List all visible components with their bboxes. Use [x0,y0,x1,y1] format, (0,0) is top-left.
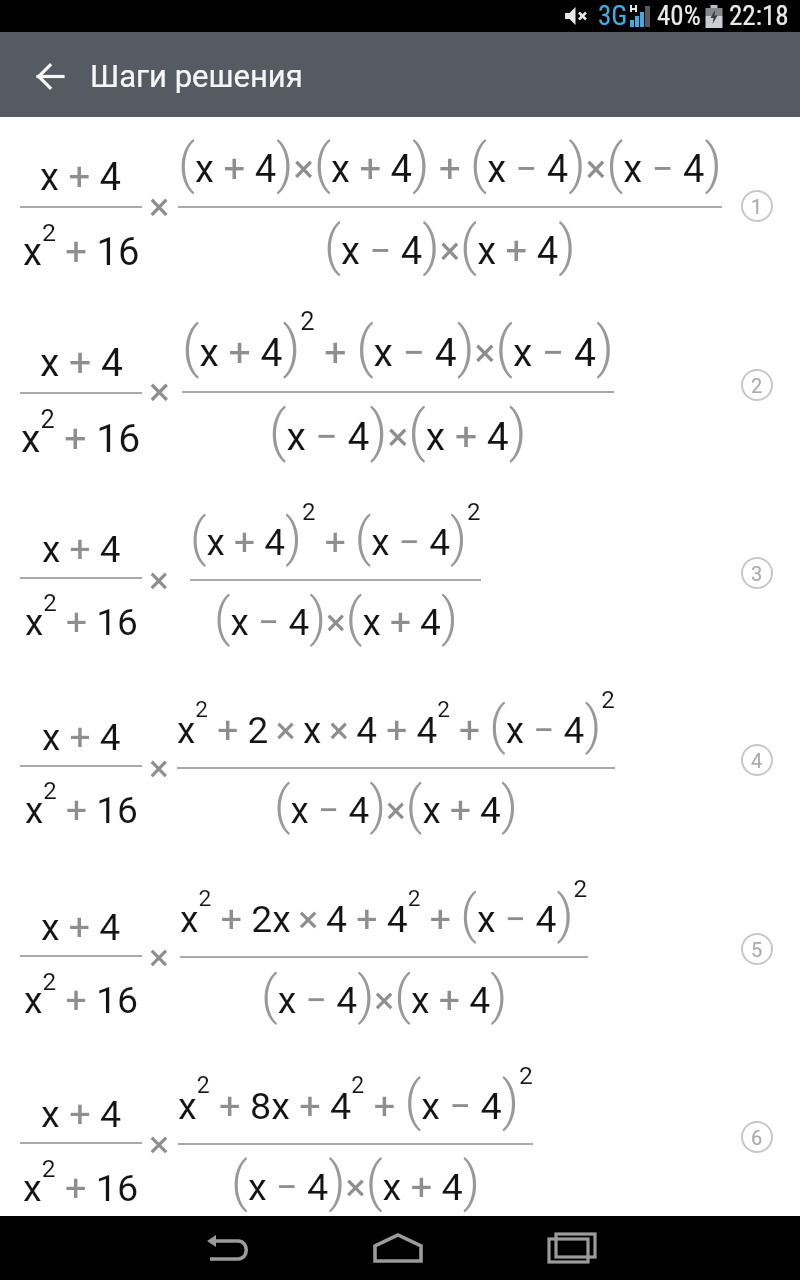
staticText: × [149,935,169,979]
staticText: (x + 4)×(x + 4) + (x − 4)×(x − 4) [178,132,722,195]
staticText: x2 + 16 [23,218,140,275]
staticText: (x − 4)×(x + 4) [231,1151,481,1213]
staticText: x2 + 16 [24,967,138,1022]
staticText: 4 [751,749,763,772]
staticText: (x − 4)×(x + 4) [269,399,527,463]
button[interactable]: x + 4 [0,117,800,1216]
staticText: x2 + 16 [21,404,141,462]
button[interactable] [522,1216,622,1280]
button[interactable]: 5 [741,933,773,965]
staticText: (x − 4)×(x + 4) [324,214,576,277]
staticText: x2 + 16 [25,777,138,832]
staticText: x + 4 [41,1092,122,1136]
staticText: × [149,185,170,230]
staticText: 5 [751,938,763,961]
button[interactable] [178,1216,278,1280]
button[interactable] [348,1216,448,1280]
staticText: x + 4 [41,905,121,949]
staticText: x2 + 16 [23,1154,139,1210]
staticText: 1 [751,195,763,218]
staticText: x + 4 [42,528,121,571]
staticText: x + 4 [40,340,123,386]
staticText: 22:18 [729,0,789,32]
staticText: 3G [598,0,628,32]
staticText: 3 [751,562,763,585]
button[interactable]: 3 [741,557,773,589]
button[interactable]: 4 [741,744,773,776]
staticText: 40% [657,0,701,32]
staticText: 6 [751,1126,763,1149]
staticText: (x − 4)×(x + 4) [274,775,518,836]
staticText: x2 + 8x + 42 + (x − 4)2 [178,1061,533,1132]
staticText: (x − 4)×(x + 4) [214,587,458,648]
button[interactable]: 1 [741,190,773,222]
staticText: × [149,559,169,602]
staticText: (x − 4)×(x + 4) [261,964,508,1025]
button[interactable]: 2 [741,369,773,401]
button[interactable]: 6 [741,1121,773,1153]
staticText: x2 + 16 [25,589,138,644]
staticText: × [149,369,170,415]
staticText: x2 + 2 × x × 4 + 42 + (x − 4)2 [177,686,615,756]
staticText: x + 4 [42,716,121,759]
staticText: (x + 4)2 + (x − 4)2 [190,498,481,568]
staticText: Шаги решения [90,58,303,94]
staticText: (x + 4)2 + (x − 4)×(x − 4) [182,306,614,380]
button[interactable] [24,50,76,102]
staticText: 2 [751,374,763,397]
staticText: × [149,1122,170,1166]
staticText: x + 4 [40,155,122,200]
staticText: x2 + 2x × 4 + 42 + (x − 4)2 [180,874,588,945]
staticText: × [149,747,169,790]
